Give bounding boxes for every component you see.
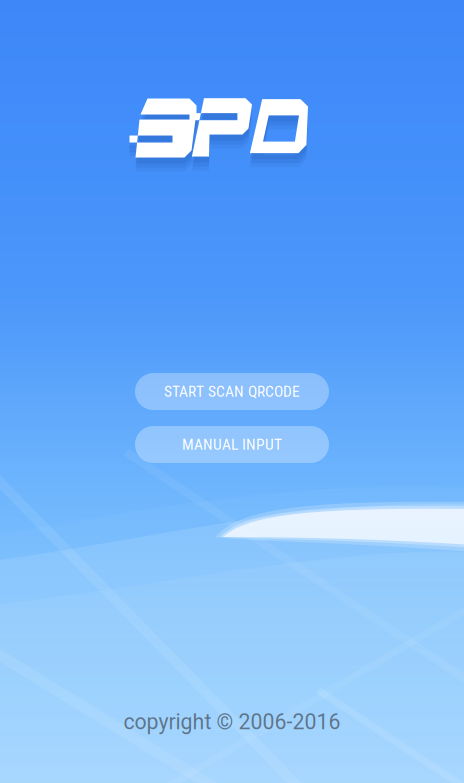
button[interactable]: MANUAL INPUT [135, 426, 329, 463]
button[interactable]: START SCAN QRCODE [135, 373, 329, 410]
staticText: MANUAL INPUT [182, 435, 282, 453]
staticText: START SCAN QRCODE [164, 382, 300, 400]
staticText: copyright © 2006-2016 [123, 709, 340, 734]
